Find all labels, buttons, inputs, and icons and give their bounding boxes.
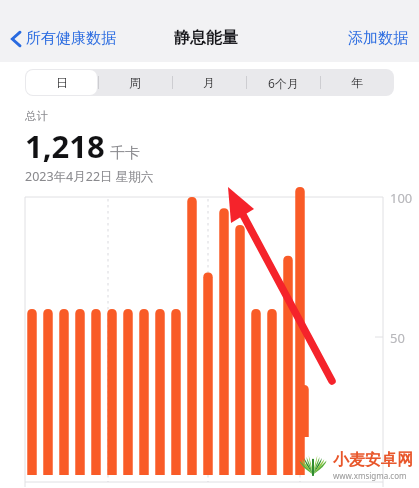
button[interactable]: 6个月 — [246, 69, 320, 96]
staticText: 100 — [390, 189, 413, 207]
staticText: 月 — [203, 75, 215, 90]
staticText: 6个月 — [268, 75, 299, 91]
button[interactable]: 所有健康数据 — [0, 25, 122, 52]
button[interactable]: 年 — [320, 69, 394, 96]
button[interactable]: 添加数据 — [337, 25, 419, 52]
staticText: 周 — [129, 75, 141, 90]
staticText: 1,218 — [25, 125, 105, 167]
staticText: 2023年4月22日 星期六 — [25, 168, 154, 185]
staticText: 年 — [351, 75, 363, 90]
staticText: 50 — [390, 329, 405, 347]
staticText: 所有健康数据 — [26, 29, 116, 48]
staticText: 小麦安卓网 — [333, 450, 413, 470]
staticText: 日 — [56, 75, 68, 90]
button[interactable]: 日 — [25, 69, 98, 96]
staticText: 总计 — [25, 109, 48, 123]
staticText: 千卡 — [110, 144, 140, 163]
button[interactable]: 月 — [172, 69, 246, 96]
staticText: 添加数据 — [348, 29, 408, 48]
staticText: 静息能量 — [174, 28, 238, 48]
staticText: www.xmsigma.com — [333, 470, 407, 481]
button[interactable]: 周 — [98, 69, 172, 96]
